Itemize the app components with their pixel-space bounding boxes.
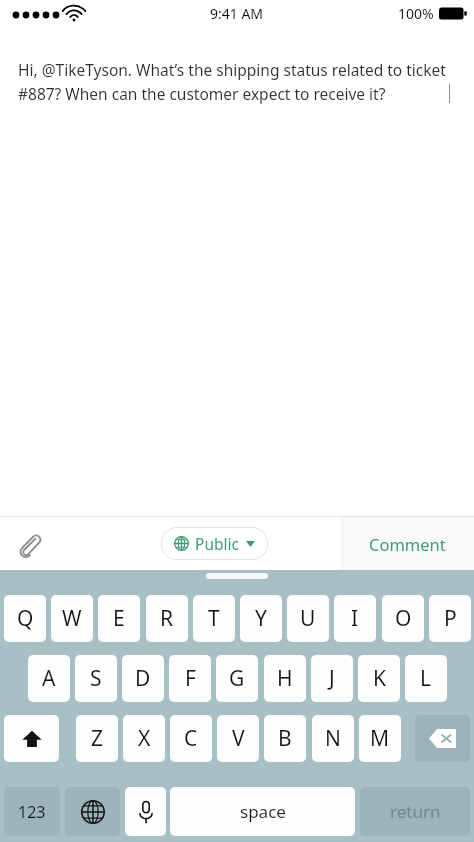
staticText: S xyxy=(90,664,102,693)
staticText: H xyxy=(277,664,293,693)
button[interactable]: U xyxy=(287,595,329,642)
staticText: E xyxy=(113,604,125,633)
button[interactable]: E xyxy=(98,595,140,642)
staticText: Q xyxy=(17,604,34,633)
staticText: V xyxy=(232,724,245,753)
button[interactable]: R xyxy=(146,595,188,642)
staticText: 100% xyxy=(398,4,434,23)
button[interactable]: V xyxy=(217,715,259,762)
button[interactable]: L xyxy=(405,655,447,702)
button[interactable]: K xyxy=(358,655,400,702)
button[interactable]: F xyxy=(169,655,211,702)
button[interactable]: return xyxy=(360,787,470,836)
staticText: I xyxy=(351,604,359,633)
staticText: P xyxy=(444,604,457,633)
staticText: R xyxy=(160,604,174,633)
staticText: F xyxy=(185,664,196,693)
button[interactable]: P xyxy=(429,595,471,642)
button[interactable]: I xyxy=(334,595,376,642)
staticText: return xyxy=(390,800,441,823)
button[interactable]: Y xyxy=(240,595,282,642)
button[interactable]: D xyxy=(122,655,164,702)
staticText: W xyxy=(62,604,82,633)
button[interactable]: B xyxy=(264,715,306,762)
button[interactable]: Z xyxy=(76,715,118,762)
button[interactable]: Change keyboard xyxy=(65,787,120,836)
button[interactable]: T xyxy=(193,595,235,642)
staticText: space xyxy=(240,800,286,823)
staticText: Hi, @TikeTyson. What’s the shipping stat… xyxy=(18,59,446,104)
button[interactable]: J xyxy=(311,655,353,702)
staticText: Z xyxy=(91,724,104,753)
button[interactable]: Comment xyxy=(341,517,474,570)
button[interactable]: space xyxy=(170,787,355,836)
button[interactable]: W xyxy=(51,595,93,642)
button[interactable]: 123 xyxy=(4,787,60,836)
staticText: J xyxy=(329,664,335,693)
staticText: D xyxy=(135,664,151,693)
button[interactable]: M xyxy=(359,715,401,762)
staticText: N xyxy=(325,724,341,753)
staticText: A xyxy=(42,664,56,693)
staticText: L xyxy=(420,664,432,693)
button[interactable]: Q xyxy=(4,595,46,642)
staticText: Public xyxy=(195,533,239,554)
button[interactable]: A xyxy=(28,655,70,702)
staticText: X xyxy=(138,724,151,753)
staticText: O xyxy=(395,604,412,633)
button[interactable]: H xyxy=(264,655,306,702)
button[interactable]: Backspace xyxy=(415,715,470,762)
button[interactable]: Attach file xyxy=(8,523,50,565)
button[interactable]: Voice input xyxy=(125,787,166,836)
staticText: K xyxy=(373,664,386,693)
staticText: G xyxy=(229,664,245,693)
staticText: C xyxy=(184,724,198,753)
button[interactable]: Shift xyxy=(4,715,59,762)
staticText: U xyxy=(300,604,316,633)
staticText: 123 xyxy=(18,801,46,823)
button[interactable]: X xyxy=(123,715,165,762)
staticText: B xyxy=(278,724,292,753)
staticText: 9:41 AM xyxy=(210,4,264,23)
button[interactable]: N xyxy=(312,715,354,762)
button[interactable]: G xyxy=(216,655,258,702)
staticText: Y xyxy=(255,604,267,633)
staticText: Comment xyxy=(369,533,446,555)
button[interactable]: C xyxy=(170,715,212,762)
button[interactable]: S xyxy=(75,655,117,702)
button[interactable]: O xyxy=(382,595,424,642)
button[interactable]: Public xyxy=(161,527,268,560)
staticText: T xyxy=(208,604,220,633)
staticText: M xyxy=(370,724,390,753)
